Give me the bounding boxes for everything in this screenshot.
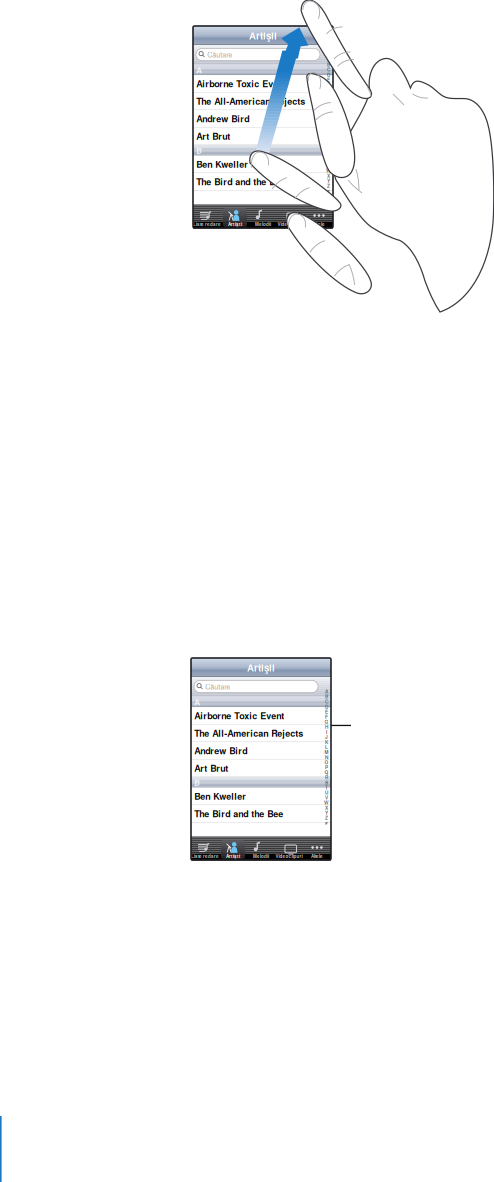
staticText: V xyxy=(327,162,330,169)
button[interactable]: Ben Kweller xyxy=(193,156,333,173)
staticText: A xyxy=(327,56,330,63)
staticText: Y xyxy=(325,809,328,816)
staticText: Melodii xyxy=(255,221,271,227)
button[interactable]: The Bird and the Bee xyxy=(193,173,333,191)
button[interactable]: Altele xyxy=(305,205,333,228)
button[interactable]: Airborne Toxic Event xyxy=(193,75,333,93)
staticText: Artişti xyxy=(226,853,240,859)
staticText: F xyxy=(327,81,330,88)
staticText: D xyxy=(325,703,328,710)
staticText: E xyxy=(327,76,330,83)
staticText: J xyxy=(327,101,330,108)
button[interactable]: Altele xyxy=(303,837,331,860)
staticText: Căutare xyxy=(207,49,232,60)
button[interactable]: Artişti xyxy=(221,205,249,228)
staticText: D xyxy=(327,71,330,78)
staticText: W xyxy=(324,799,329,806)
staticText: Artişli xyxy=(247,661,275,674)
staticText: E xyxy=(325,708,328,715)
staticText: Artişti xyxy=(228,221,242,227)
staticText: T xyxy=(325,784,328,791)
staticText: K xyxy=(327,107,330,113)
staticText: R xyxy=(325,774,328,781)
staticText: P xyxy=(325,764,328,771)
button[interactable]: The All-American Rejects xyxy=(191,725,331,742)
staticText: C xyxy=(325,698,328,705)
button[interactable]: Airborne Toxic Event xyxy=(191,707,331,725)
button[interactable]: Art Brut xyxy=(191,760,331,777)
staticText: U xyxy=(325,789,328,796)
button[interactable]: The All-American Rejects xyxy=(193,93,333,110)
staticText: # xyxy=(325,819,328,826)
staticText: B xyxy=(325,693,328,700)
staticText: The Bird and the Bee xyxy=(196,175,285,188)
staticText: G xyxy=(324,718,328,725)
staticText: A xyxy=(196,64,202,76)
staticText: Altele xyxy=(311,853,323,859)
staticText: K xyxy=(325,739,328,745)
button[interactable]: Index alfabetic xyxy=(324,45,333,205)
button[interactable]: Melodii xyxy=(249,205,277,228)
staticText: W xyxy=(326,167,331,174)
staticText: I xyxy=(326,728,327,735)
staticText: Z xyxy=(327,182,330,189)
staticText: J xyxy=(325,733,328,740)
staticText: X xyxy=(325,804,328,811)
staticText: C xyxy=(327,66,330,73)
staticText: L xyxy=(325,744,328,750)
staticText: The Bird and the Bee xyxy=(194,807,283,820)
staticText: Videoclipuri xyxy=(277,221,304,227)
staticText: M xyxy=(324,749,328,756)
button[interactable]: Art Brut xyxy=(193,128,333,145)
staticText: I xyxy=(328,96,329,103)
button[interactable]: Andrew Bird xyxy=(191,742,331,760)
button[interactable]: Andrew Bird xyxy=(193,110,333,128)
staticText: B xyxy=(327,61,330,68)
staticText: Ben Kweller xyxy=(194,790,246,803)
staticText: Liste redare xyxy=(193,221,221,227)
staticText: Melodii xyxy=(253,853,269,859)
staticText: Z xyxy=(325,814,328,821)
staticText: S xyxy=(325,779,328,786)
staticText: X xyxy=(327,172,330,179)
staticText: Y xyxy=(327,177,330,184)
button[interactable]: Artişti xyxy=(219,837,247,860)
staticText: N xyxy=(325,754,328,761)
staticText: V xyxy=(325,794,328,801)
staticText: Airborne Toxic Event xyxy=(194,709,284,722)
staticText: F xyxy=(325,713,328,720)
staticText: Altele xyxy=(313,221,325,227)
button[interactable]: Melodii xyxy=(247,837,275,860)
staticText: Andrew Bird xyxy=(196,112,249,125)
staticText: B xyxy=(194,777,200,788)
staticText: B xyxy=(196,145,202,156)
staticText: A xyxy=(194,696,200,708)
button[interactable]: Liste redare xyxy=(193,205,221,228)
button[interactable]: Videoclipuri xyxy=(275,837,303,860)
staticText: Airborne Toxic Event xyxy=(196,77,286,90)
button[interactable]: Liste redare xyxy=(191,837,219,860)
staticText: Liste redare xyxy=(191,853,219,859)
staticText: O xyxy=(324,759,328,766)
staticText: The All-American Rejects xyxy=(196,95,305,108)
button[interactable]: The Bird and the Bee xyxy=(191,805,331,823)
button[interactable]: Videoclipuri xyxy=(277,205,305,228)
staticText: The All-American Rejects xyxy=(194,727,303,740)
staticText: L xyxy=(327,112,330,118)
button[interactable]: Ben Kweller xyxy=(191,788,331,805)
button[interactable]: Index alfabetic xyxy=(322,677,331,837)
staticText: Videoclipuri xyxy=(275,853,302,859)
staticText: Art Brut xyxy=(196,130,230,143)
staticText: Art Brut xyxy=(194,762,228,775)
staticText: Ben Kweller xyxy=(196,158,248,171)
staticText: Căutare xyxy=(205,681,230,692)
staticText: Andrew Bird xyxy=(194,744,247,757)
